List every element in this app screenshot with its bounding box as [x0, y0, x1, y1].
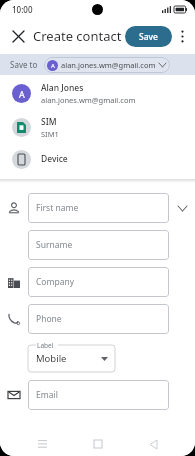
staticText: Company [36, 276, 75, 288]
button[interactable]: SIM [0, 111, 195, 143]
staticText: Create contact [33, 27, 122, 45]
staticText: A [19, 88, 25, 100]
staticText: Alan Jones [41, 82, 84, 94]
button[interactable]: A [0, 75, 195, 111]
button[interactable]: Save [125, 26, 172, 47]
staticText: alan.jones.wm@gmail.com [41, 95, 136, 105]
button[interactable]: Email [28, 380, 169, 410]
staticText: Label [37, 341, 54, 350]
button[interactable]: Recent apps [29, 432, 55, 456]
staticText: Surname [36, 239, 73, 251]
button[interactable]: First name [28, 193, 169, 223]
button[interactable]: Expand name fields [169, 195, 195, 221]
button[interactable]: Close [6, 24, 30, 48]
button[interactable]: A [44, 57, 170, 73]
button[interactable]: Home [85, 432, 111, 456]
staticText: A [51, 62, 55, 70]
button[interactable]: Surname [28, 230, 169, 260]
staticText: SIM [41, 116, 57, 128]
staticText: Device [41, 153, 68, 165]
staticText: First name [36, 202, 79, 214]
button[interactable]: Mobile [28, 345, 115, 372]
staticText: Email [36, 389, 58, 401]
button[interactable]: Device [0, 143, 195, 175]
staticText: Mobile [36, 352, 67, 365]
button[interactable]: More options [172, 26, 192, 46]
staticText: alan.jones.wm@gmail.com [61, 60, 156, 70]
button[interactable]: Company [28, 267, 169, 297]
button[interactable]: Phone [28, 304, 169, 334]
staticText: SIM1 [41, 129, 59, 139]
staticText: Save to [10, 59, 38, 70]
staticText: Save [139, 31, 158, 43]
staticText: 10:00 [12, 4, 33, 15]
staticText: Phone [36, 313, 62, 325]
button[interactable]: Back [140, 432, 166, 456]
